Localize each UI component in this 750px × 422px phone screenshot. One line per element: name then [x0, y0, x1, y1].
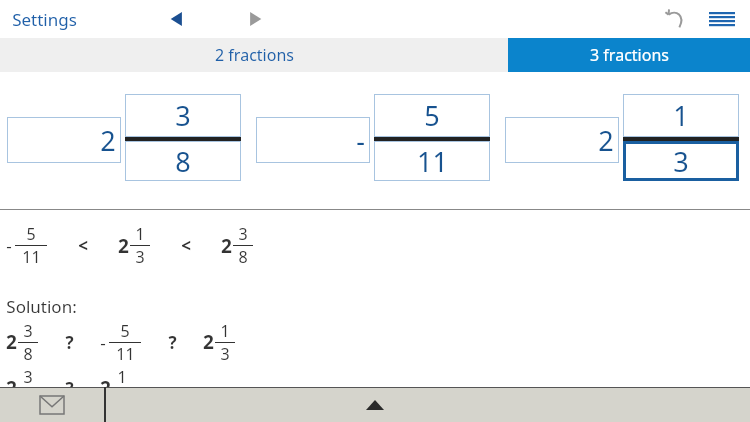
button[interactable]: Undo	[656, 0, 694, 38]
staticText: 2	[221, 233, 232, 259]
staticText: 3	[135, 246, 145, 268]
staticText: 5	[120, 320, 130, 342]
button[interactable]: 2	[7, 117, 121, 163]
staticText: 3 fractions	[590, 44, 669, 66]
staticText: -	[6, 234, 12, 257]
staticText: 2 fractions	[215, 44, 294, 66]
button[interactable]: 2	[505, 117, 619, 163]
staticText: 5	[26, 223, 36, 245]
button[interactable]: Settings	[10, 4, 79, 35]
staticText: ?	[168, 331, 177, 354]
button[interactable]: 1	[623, 94, 739, 137]
staticText: 11	[116, 343, 135, 364]
staticText: 11	[417, 143, 448, 180]
staticText: Settings	[12, 8, 77, 31]
staticText: 3	[220, 343, 230, 364]
staticText: <	[181, 234, 191, 257]
button[interactable]: -	[256, 117, 370, 163]
button[interactable]: Menu	[702, 0, 742, 38]
staticText: Solution:	[6, 295, 77, 318]
staticText: 1	[673, 97, 689, 134]
staticText: 1	[135, 223, 145, 245]
staticText: 3	[673, 143, 689, 180]
staticText: 2	[6, 375, 17, 401]
staticText: 5	[424, 97, 440, 134]
staticText: 8	[23, 343, 33, 364]
button[interactable]: 2 fractions	[0, 38, 508, 72]
button[interactable]: 3 fractions	[508, 38, 750, 72]
button[interactable]: 5	[374, 94, 490, 137]
staticText: 2	[100, 375, 111, 401]
staticText: 2	[6, 329, 17, 355]
staticText: -	[100, 331, 106, 354]
staticText: 2	[100, 122, 116, 159]
staticText: 11	[22, 246, 41, 268]
staticText: 1	[220, 320, 230, 342]
staticText: <	[78, 234, 88, 257]
button[interactable]: 11	[374, 141, 490, 181]
button[interactable]: Next	[238, 2, 272, 36]
staticText: 2	[118, 233, 129, 259]
staticText: ?	[65, 331, 74, 354]
button[interactable]: Mail	[0, 387, 104, 422]
button[interactable]: Expand	[355, 387, 395, 422]
staticText: -	[356, 122, 365, 159]
staticText: 2	[203, 329, 214, 355]
button[interactable]: 3	[623, 141, 739, 181]
staticText: 3	[175, 97, 191, 134]
staticText: 2	[598, 122, 614, 159]
staticText: 8	[238, 246, 248, 268]
staticText: 3	[238, 223, 248, 245]
staticText: ?	[65, 377, 74, 400]
staticText: 1	[117, 366, 127, 388]
staticText: 3	[23, 366, 33, 388]
button[interactable]: 8	[125, 141, 241, 181]
button[interactable]: 3	[125, 94, 241, 137]
button[interactable]: Previous	[160, 2, 194, 36]
staticText: 8	[175, 143, 191, 180]
staticText: 3	[23, 320, 33, 342]
